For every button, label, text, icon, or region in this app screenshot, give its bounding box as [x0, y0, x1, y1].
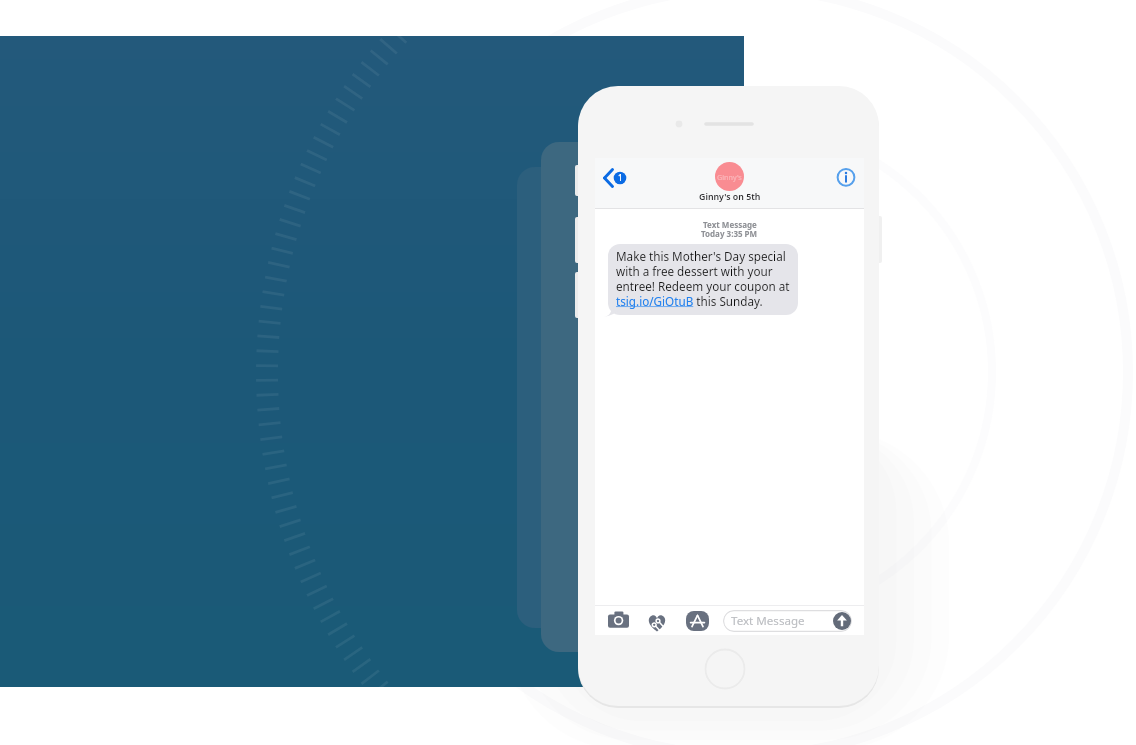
button[interactable]: App Store	[686, 611, 709, 631]
staticText: Text Message	[703, 219, 757, 230]
staticText: Ginny's	[717, 172, 742, 182]
staticText: Ginny's on 5th	[699, 191, 761, 203]
button[interactable]: Make this Mother's Day special with a fr…	[608, 244, 798, 315]
button[interactable]: Text Message	[723, 610, 852, 632]
button[interactable]: Ginny's	[715, 162, 744, 191]
staticText: Today 3:35 PM	[701, 228, 758, 239]
staticText: Text Message	[731, 613, 805, 629]
button[interactable]: Camera	[608, 611, 629, 628]
button[interactable]: Details	[832, 164, 860, 192]
button[interactable]: Digital Touch	[647, 613, 667, 632]
staticText: 1	[618, 172, 623, 183]
staticText: Make this Mother's Day special with a fr…	[616, 248, 792, 309]
button[interactable]: Back	[599, 164, 635, 194]
button[interactable]: Send	[833, 612, 851, 630]
